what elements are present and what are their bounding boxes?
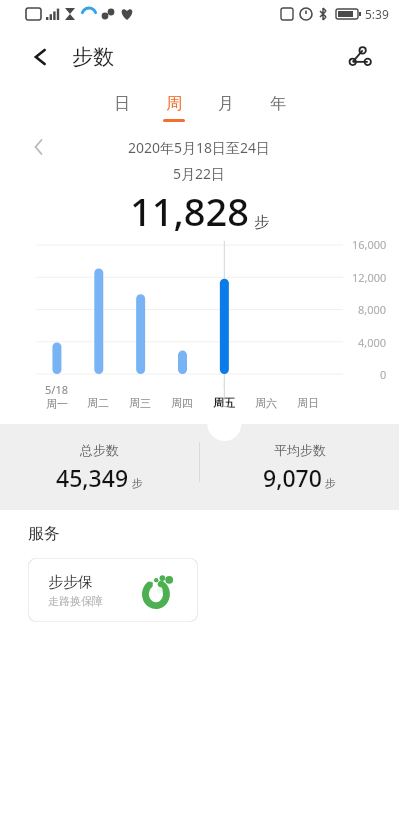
staticText: 周二 bbox=[87, 396, 109, 410]
staticText: 服务 bbox=[28, 524, 60, 544]
staticText: 0 bbox=[380, 367, 387, 382]
button[interactable]: 日 bbox=[96, 86, 148, 130]
staticText: 5/18 bbox=[45, 382, 68, 397]
staticText: 走路换保障 bbox=[48, 594, 103, 608]
button[interactable]: 步步保 bbox=[28, 558, 198, 622]
staticText: 5:39 bbox=[365, 6, 389, 22]
staticText: 45,349 bbox=[56, 462, 129, 493]
staticText: 周五 bbox=[213, 396, 235, 410]
button[interactable]: 月 bbox=[200, 86, 252, 130]
button[interactable]: 平均步数 bbox=[200, 442, 399, 493]
staticText: 8,000 bbox=[358, 302, 387, 317]
staticText: 9,070 bbox=[263, 462, 322, 493]
staticText: 2020年5月18日至24日 bbox=[128, 138, 271, 157]
staticText: 步 bbox=[132, 476, 143, 490]
staticText: 周四 bbox=[171, 396, 193, 410]
button[interactable]: 年 bbox=[252, 86, 304, 130]
button[interactable]: 总步数 bbox=[0, 442, 199, 493]
button[interactable]: 周 bbox=[148, 86, 200, 130]
staticText: 周 bbox=[166, 94, 182, 114]
staticText: 周一 bbox=[46, 397, 68, 411]
staticText: 总步数 bbox=[80, 442, 119, 458]
staticText: 5月22日 bbox=[173, 164, 226, 183]
staticText: 平均步数 bbox=[274, 442, 326, 458]
staticText: 步步保 bbox=[48, 573, 93, 592]
staticText: 16,000 bbox=[352, 237, 387, 252]
button[interactable]: Previous week bbox=[24, 132, 54, 162]
staticText: 日 bbox=[114, 94, 130, 114]
button[interactable]: Back bbox=[22, 37, 62, 77]
staticText: 月 bbox=[218, 94, 234, 114]
staticText: 周六 bbox=[255, 396, 277, 410]
staticText: 步 bbox=[254, 213, 269, 232]
staticText: 周日 bbox=[297, 396, 319, 410]
staticText: 11,828 bbox=[130, 185, 250, 237]
staticText: 周三 bbox=[129, 396, 151, 410]
staticText: 步数 bbox=[72, 44, 114, 70]
staticText: 年 bbox=[270, 94, 286, 114]
staticText: 12,000 bbox=[352, 270, 387, 285]
staticText: 4,000 bbox=[358, 335, 387, 350]
button[interactable]: Share bbox=[339, 36, 381, 78]
staticText: 步 bbox=[325, 476, 336, 490]
